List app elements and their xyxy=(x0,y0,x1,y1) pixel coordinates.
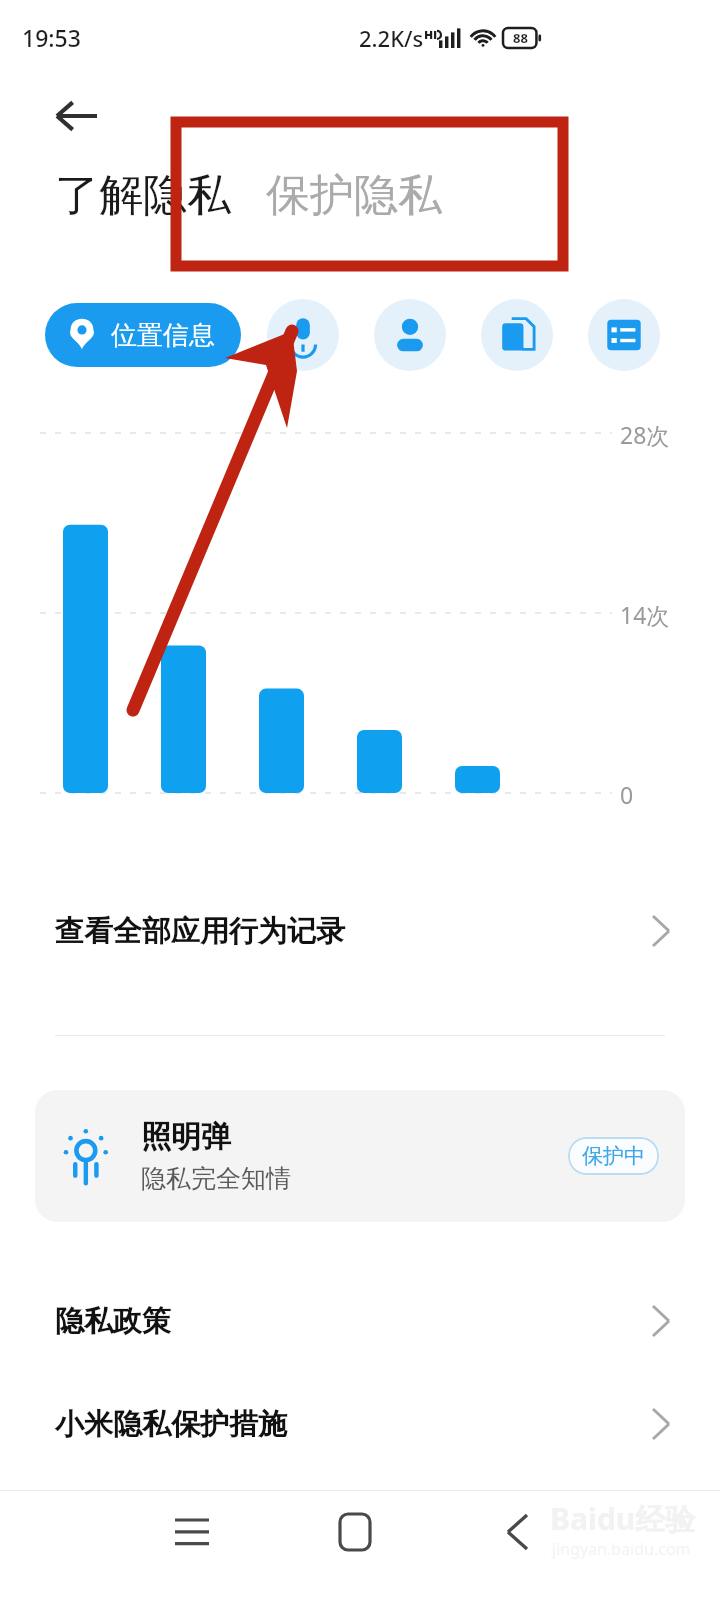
button[interactable]: Recents xyxy=(152,1492,232,1572)
staticText: 照明弹 xyxy=(141,1118,231,1156)
button[interactable]: 隐私政策 xyxy=(0,1285,720,1357)
staticText: 查看全部应用行为记录 xyxy=(55,913,652,950)
staticText: 隐私完全知情 xyxy=(141,1163,291,1194)
button[interactable]: 照明弹 xyxy=(35,1090,685,1222)
staticText: 28次 xyxy=(620,419,670,450)
button[interactable]: 保护中 xyxy=(568,1137,659,1175)
button[interactable]: Home xyxy=(315,1492,395,1572)
button[interactable]: 位置信息 xyxy=(45,303,241,367)
staticText: 位置信息 xyxy=(111,319,215,352)
button[interactable]: 了解隐私 xyxy=(55,168,231,223)
button[interactable]: Back xyxy=(40,88,112,144)
button[interactable]: 查看全部应用行为记录 xyxy=(0,895,720,967)
staticText: 19:53 xyxy=(22,22,81,53)
staticText: 保护隐私 xyxy=(266,168,442,223)
button[interactable]: Files xyxy=(481,299,553,371)
button[interactable]: Contacts xyxy=(374,299,446,371)
staticText: 88 xyxy=(513,29,528,47)
button[interactable]: List xyxy=(588,299,660,371)
staticText: 保护中 xyxy=(582,1143,645,1169)
staticText: 小米隐私保护措施 xyxy=(55,1406,652,1443)
button[interactable]: 小米隐私保护措施 xyxy=(0,1388,720,1460)
button[interactable]: Microphone xyxy=(267,299,339,371)
staticText: 了解隐私 xyxy=(55,168,231,223)
button[interactable]: 保护隐私 xyxy=(266,168,442,223)
staticText: 2.2K/s xyxy=(359,23,424,53)
staticText: Baidu经验 xyxy=(550,1498,696,1539)
staticText: 0 xyxy=(620,779,634,810)
staticText: jingyan.baidu.com xyxy=(552,1538,691,1560)
staticText: 14次 xyxy=(620,599,670,630)
staticText: 隐私政策 xyxy=(55,1303,652,1340)
button[interactable]: Back xyxy=(477,1492,557,1572)
